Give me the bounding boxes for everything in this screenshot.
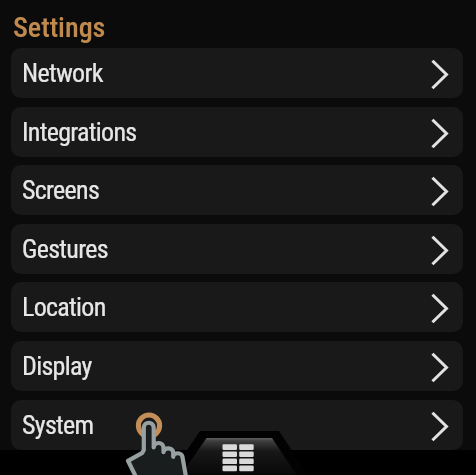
staticText: Location bbox=[22, 292, 106, 322]
button[interactable]: Location bbox=[11, 282, 463, 332]
staticText: Integrations bbox=[22, 117, 137, 147]
staticText: System bbox=[22, 410, 94, 440]
button[interactable]: Screens bbox=[11, 165, 463, 215]
staticText: Settings bbox=[13, 11, 106, 44]
staticText: Screens bbox=[22, 175, 100, 205]
button[interactable]: Gestures bbox=[11, 224, 463, 274]
button[interactable]: Display bbox=[11, 341, 463, 391]
staticText: Network bbox=[22, 58, 103, 88]
button[interactable] bbox=[198, 430, 280, 475]
staticText: Gestures bbox=[22, 234, 108, 264]
button[interactable]: System bbox=[11, 400, 463, 450]
staticText: Display bbox=[22, 351, 92, 381]
button[interactable]: Integrations bbox=[11, 107, 463, 157]
button[interactable]: Network bbox=[11, 48, 463, 98]
